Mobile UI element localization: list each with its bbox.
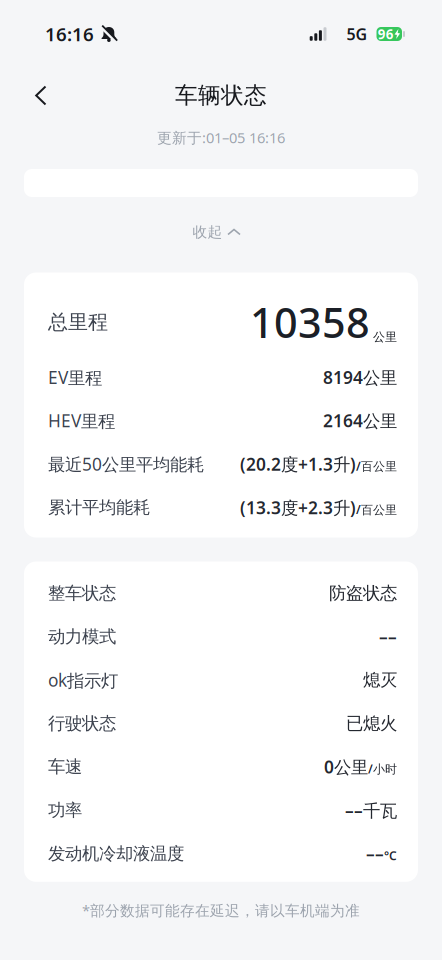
- staticText: 动力模式: [48, 626, 116, 647]
- staticText: 96: [378, 25, 394, 43]
- staticText: °C: [384, 848, 397, 864]
- staticText: 功率: [48, 800, 82, 821]
- staticText: 车辆状态: [175, 82, 267, 109]
- staticText: 5G: [346, 23, 367, 45]
- staticText: *部分数据可能存在延迟，请以车机端为准: [82, 900, 360, 920]
- staticText: EV里程: [48, 366, 102, 389]
- staticText: 收起: [192, 223, 222, 241]
- staticText: 公里: [373, 330, 397, 344]
- staticText: 2164公里: [323, 409, 397, 432]
- button[interactable]: Back: [0, 77, 47, 113]
- staticText: HEV里程: [48, 409, 115, 432]
- staticText: 总里程: [48, 310, 108, 334]
- staticText: ok指示灯: [48, 668, 118, 692]
- staticText: 整车状态: [48, 583, 116, 604]
- staticText: /百公里: [356, 458, 397, 474]
- staticText: /百公里: [356, 501, 397, 517]
- staticText: ––: [366, 842, 384, 865]
- staticText: ––: [379, 625, 397, 648]
- staticText: 防盗状态: [329, 583, 397, 604]
- staticText: /小时: [368, 761, 397, 777]
- staticText: 行驶状态: [48, 713, 116, 734]
- staticText: (13.3度+2.3升): [240, 496, 356, 519]
- button[interactable]: 收起: [182, 223, 250, 241]
- staticText: 更新于:01–05 16:16: [157, 128, 285, 147]
- staticText: 8194公里: [323, 366, 397, 389]
- staticText: 发动机冷却液温度: [48, 843, 184, 864]
- staticText: 熄灭: [363, 669, 397, 691]
- staticText: 0公里: [324, 755, 368, 778]
- staticText: ––千瓦: [345, 799, 397, 822]
- staticText: 最近50公里平均能耗: [48, 452, 204, 475]
- staticText: 车速: [48, 756, 82, 777]
- staticText: 累计平均能耗: [48, 497, 150, 518]
- staticText: 10358: [250, 295, 370, 349]
- staticText: (20.2度+1.3升): [240, 452, 356, 475]
- staticText: 16:16: [45, 22, 94, 46]
- staticText: 已熄火: [346, 713, 397, 734]
